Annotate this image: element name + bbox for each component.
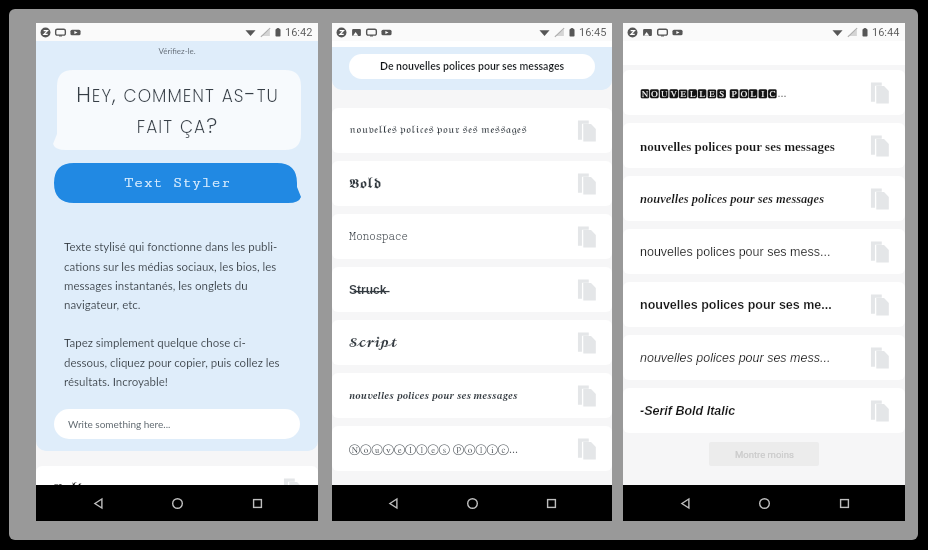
staticText: 16:44 [872,26,900,39]
button[interactable]: Copy [573,330,599,356]
button[interactable]: De nouvelles polices pour ses messages [349,54,595,79]
staticText: 𝙼𝚘𝚗𝚘𝚜𝚙𝚊𝚌𝚎 [349,231,573,243]
staticText: Tapez simplement quelque chose ci- desso… [64,336,280,388]
staticText: Vérifiez-le. [36,46,318,56]
button[interactable]: Copy [279,476,305,502]
staticText: 𝒏𝒐𝒖𝒗𝒆𝒍𝒍𝒆𝒔 𝒑𝒐𝒍𝒊𝒄𝒆𝒔 𝒑𝒐𝒖𝒓 𝒔𝒆𝒔 𝒎𝒆𝒔𝒔𝒂𝒈𝒆𝒔 [349,391,573,401]
button[interactable]: nouvelles polices pour ses messages [623,176,905,221]
button[interactable]: Copy [866,292,892,318]
staticText: 16:45 [579,26,607,39]
button[interactable]: 𝕭𝖔𝖑𝖉 [332,161,612,206]
button[interactable]: Copy [866,186,892,212]
staticText: S̶t̶r̶u̶c̶k̶ [349,283,573,296]
button[interactable]: Copy [573,277,599,303]
button[interactable]: Copy [573,171,599,197]
button[interactable]: Copy [573,224,599,250]
staticText: Texte stylisé qui fonctionne dans les pu… [64,240,278,311]
button[interactable]: Home [454,485,490,521]
button[interactable]: -Serif Bold Italic [623,388,905,433]
button[interactable]: Copy [866,239,892,265]
staticText: Ⓝⓞⓤⓥⓔⓛⓛⓔⓢ ⓟⓞⓛⓘⓒ... [349,443,573,455]
button[interactable]: Write something here... [54,409,300,439]
staticText: HEY, COMMENT AS-TU FAIT ÇA? [76,79,279,141]
button[interactable]: Back [80,485,116,521]
button[interactable]: S̶t̶r̶u̶c̶k̶ [332,267,612,312]
staticText: nouvelles polices pour ses me... [640,298,866,312]
button[interactable]: Back [375,485,411,521]
button[interactable]: Copy [866,398,892,424]
button[interactable]: Home [159,485,195,521]
staticText: nouvelles polices pour ses messages [640,139,866,153]
button[interactable]: Text Styler [54,163,301,203]
button[interactable]: Copy [866,345,892,371]
button[interactable]: 𝓢𝓬𝓻𝓲𝓹𝓽 [332,320,612,365]
staticText: Montre moins [735,449,794,460]
button[interactable]: Recent apps [239,485,275,521]
button[interactable]: nouvelles polices pour ses messages [623,123,905,168]
staticText: 16:42 [285,26,313,39]
staticText: nouvelles polices pour ses mess... [640,351,866,365]
staticText: 𝓢𝓬𝓻𝓲𝓹𝓽 [349,336,573,350]
button[interactable]: Copy [866,80,892,106]
button[interactable]: 𝕭𝖔𝖑𝖉 [36,466,318,511]
button[interactable]: nouvelles polices pour ses mess... [623,229,905,274]
staticText: 🅽🅾🆄🆅🅴🅻🅻🅴🆂 🅿🅾🅻🅸🅲... [640,87,866,99]
button[interactable]: Back [667,485,703,521]
button[interactable]: Copy [573,436,599,462]
staticText: Write something here... [68,418,171,430]
button[interactable]: Ⓝⓞⓤⓥⓔⓛⓛⓔⓢ ⓟⓞⓛⓘⓒ... [332,426,612,471]
button[interactable]: nouvelles polices pour ses me... [623,282,905,327]
button[interactable]: Copy [573,118,599,144]
staticText: nouvelles polices pour ses mess... [640,245,866,259]
staticText: 𝕭𝖔𝖑𝖉 [349,177,573,191]
staticText: nouvelles polices pour ses messages [640,192,866,206]
button[interactable]: 𝙼𝚘𝚗𝚘𝚜𝚙𝚊𝚌𝚎 [332,214,612,259]
staticText: 𝕭𝖔𝖑𝖉 [53,482,279,496]
staticText: Text Styler [124,174,231,192]
button[interactable]: 𝒏𝒐𝒖𝒗𝒆𝒍𝒍𝒆𝒔 𝒑𝒐𝒍𝒊𝒄𝒆𝒔 𝒑𝒐𝒖𝒓 𝒔𝒆𝒔 𝒎𝒆𝒔𝒔𝒂𝒈𝒆𝒔 [332,373,612,418]
button[interactable]: 🅽🅾🆄🆅🅴🅻🅻🅴🆂 🅿🅾🅻🅸🅲... [623,70,905,115]
staticText: De nouvelles polices pour ses messages [380,60,565,73]
staticText: -Serif Bold Italic [640,404,866,418]
button[interactable]: Montre moins [709,442,819,466]
button[interactable]: nouvelles polices pour ses mess... [623,335,905,380]
staticText: 𝔫𝔬𝔲𝔳𝔢𝔩𝔩𝔢𝔰 𝔭𝔬𝔩𝔦𝔠𝔢𝔰 𝔭𝔬𝔲𝔯 𝔰𝔢𝔰 𝔪𝔢𝔰𝔰𝔞𝔤𝔢𝔰 [349,125,573,136]
button[interactable]: Recent apps [533,485,569,521]
button[interactable]: Recent apps [826,485,862,521]
button[interactable]: Copy [866,133,892,159]
button[interactable]: Home [746,485,782,521]
button[interactable]: 𝔫𝔬𝔲𝔳𝔢𝔩𝔩𝔢𝔰 𝔭𝔬𝔩𝔦𝔠𝔢𝔰 𝔭𝔬𝔲𝔯 𝔰𝔢𝔰 𝔪𝔢𝔰𝔰𝔞𝔤𝔢𝔰 [332,108,612,153]
button[interactable]: Copy [573,383,599,409]
